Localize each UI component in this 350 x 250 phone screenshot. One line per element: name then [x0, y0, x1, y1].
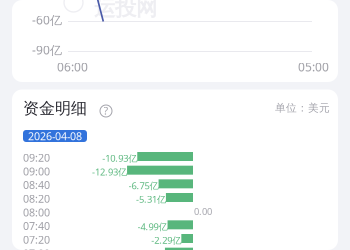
staticText: 09:00	[23, 164, 50, 178]
staticText: 单位：美元	[275, 101, 330, 115]
staticText: -4.99亿	[138, 220, 168, 233]
staticText: 资金明细	[23, 98, 87, 118]
staticText: -5.31亿	[136, 193, 166, 205]
staticText: 0.00	[194, 205, 212, 218]
staticText: 07:40	[23, 219, 50, 233]
staticText: 05:00	[298, 59, 329, 75]
staticText: -10.93亿	[102, 152, 137, 164]
button[interactable]: 2026-04-08	[23, 130, 87, 142]
staticText: 08:20	[23, 191, 50, 206]
staticText: 08:40	[23, 178, 50, 192]
staticText: ?	[103, 103, 108, 118]
staticText: 2026-04-08	[28, 129, 82, 143]
staticText: -90亿	[32, 42, 62, 58]
staticText: 09:20	[23, 150, 50, 165]
staticText: 运投网	[94, 0, 157, 21]
staticText: -12.93亿	[92, 166, 127, 178]
staticText: 06:00	[57, 59, 88, 75]
staticText: -60亿	[32, 12, 62, 28]
staticText: 08:00	[23, 205, 50, 219]
staticText: -2.29亿	[151, 234, 181, 246]
staticText: 07:20	[23, 232, 50, 247]
staticText: 07:00	[23, 246, 50, 250]
staticText: -6.75亿	[129, 179, 159, 192]
button[interactable]: 资金明细说明	[98, 103, 114, 119]
